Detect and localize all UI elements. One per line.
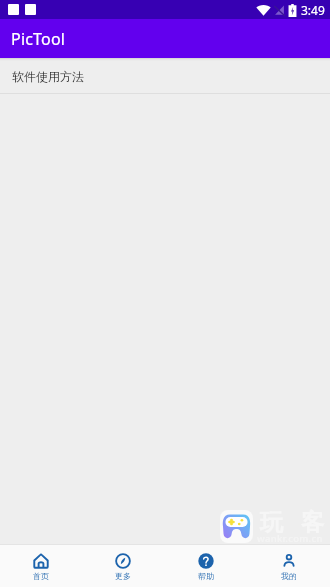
staticText: 首页 bbox=[33, 571, 49, 581]
staticText: 我的 bbox=[281, 571, 297, 581]
staticText: 更多 bbox=[115, 571, 131, 581]
staticText: 软件使用方法 bbox=[12, 69, 84, 84]
button[interactable]: More bbox=[82, 552, 164, 581]
staticText: PicTool bbox=[11, 28, 66, 50]
button[interactable]: Help bbox=[164, 552, 247, 581]
staticText: 帮助 bbox=[198, 571, 214, 581]
button[interactable]: 软件使用方法 bbox=[0, 58, 330, 93]
button[interactable]: Mine bbox=[247, 552, 330, 581]
button[interactable]: Home bbox=[0, 552, 82, 581]
staticText: wankr.com.cn bbox=[257, 532, 323, 545]
staticText: 3:49 bbox=[301, 2, 325, 18]
staticText: 玩客 bbox=[251, 508, 330, 537]
